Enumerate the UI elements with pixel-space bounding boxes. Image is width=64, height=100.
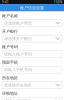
staticText: 请输入详细地址 bbox=[4, 98, 32, 100]
staticText: 100% bbox=[54, 0, 62, 4]
staticText: 9:41 bbox=[2, 0, 9, 4]
button[interactable]: 请选择所在地区 bbox=[2, 82, 62, 89]
staticText: 请选择开户银行 bbox=[4, 36, 32, 41]
staticText: 预留手机 bbox=[2, 60, 18, 65]
staticText: 账户号码 bbox=[2, 44, 18, 49]
staticText: 请输入账户号码 bbox=[4, 52, 32, 57]
staticText: 开户银行 bbox=[2, 29, 18, 34]
staticText: 所在地区 bbox=[2, 76, 18, 80]
staticText: 请选择账户类型 bbox=[4, 21, 32, 26]
staticText: 详细地址 bbox=[2, 91, 18, 96]
staticText: 账户名称 bbox=[2, 13, 18, 18]
button[interactable]: 请选择开户银行 bbox=[2, 35, 62, 42]
button[interactable]: 请输入详细地址 bbox=[2, 97, 62, 100]
staticText: 请选择所在地区 bbox=[4, 83, 32, 88]
staticText: 请输入手机号码 bbox=[4, 67, 32, 72]
button[interactable]: 请选择账户类型 bbox=[2, 20, 62, 27]
button[interactable]: 请输入手机号码 bbox=[2, 66, 62, 73]
button[interactable]: 请输入账户号码 bbox=[2, 51, 62, 58]
staticText: 账户信息设置 bbox=[20, 5, 44, 10]
